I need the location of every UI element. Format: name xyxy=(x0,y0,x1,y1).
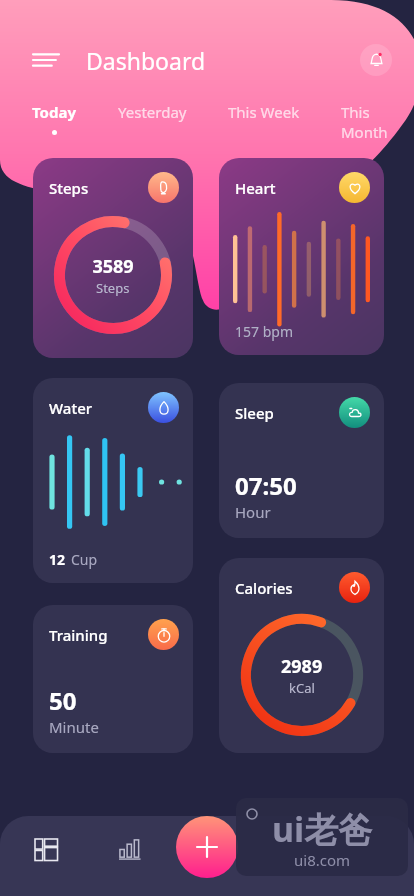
button[interactable]: Today xyxy=(30,100,79,137)
button[interactable]: Add xyxy=(176,816,238,878)
staticText: This Month xyxy=(341,102,412,142)
staticText: Training xyxy=(49,625,108,645)
button[interactable]: Steps xyxy=(33,158,193,358)
staticText: Heart xyxy=(235,178,276,198)
button[interactable]: Heart xyxy=(219,158,384,355)
button[interactable]: Calories xyxy=(219,558,384,753)
staticText: Sleep xyxy=(235,403,274,423)
staticText: 157 bpm xyxy=(235,322,293,341)
staticText: This Week xyxy=(228,102,300,122)
button[interactable]: Dashboard xyxy=(24,827,68,871)
button[interactable]: This Month xyxy=(339,100,414,144)
staticText: 07:50 xyxy=(235,469,297,502)
staticText: Steps xyxy=(96,279,130,297)
staticText: ui8.com xyxy=(294,850,351,870)
staticText: Dashboard xyxy=(86,45,206,76)
staticText: 50 xyxy=(49,684,77,717)
staticText: Minute xyxy=(49,717,99,737)
staticText: Yesterday xyxy=(118,102,187,122)
button[interactable]: Menu xyxy=(26,40,66,80)
button[interactable]: This Week xyxy=(226,100,302,124)
staticText: Hour xyxy=(235,502,271,522)
staticText: Steps xyxy=(49,178,89,198)
staticText: kCal xyxy=(289,679,315,697)
staticText: Water xyxy=(49,398,93,418)
button[interactable]: Sleep xyxy=(219,383,384,538)
staticText: ui老爸 xyxy=(272,806,373,852)
button[interactable]: Training xyxy=(33,605,193,753)
staticText: 2989 xyxy=(281,654,323,679)
staticText: Today xyxy=(32,102,77,122)
button[interactable]: Notifications xyxy=(360,44,392,76)
staticText: 12 xyxy=(49,550,66,569)
button[interactable]: Water xyxy=(33,378,193,583)
button[interactable]: Statistics xyxy=(108,827,152,871)
staticText: Cup xyxy=(71,550,98,569)
staticText: 3589 xyxy=(92,254,134,279)
button[interactable]: Yesterday xyxy=(116,100,189,124)
staticText: Calories xyxy=(235,578,293,598)
